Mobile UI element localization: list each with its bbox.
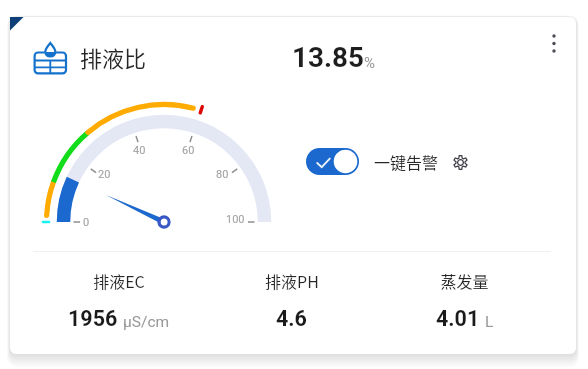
- button[interactable]: 蒸发量: [378, 269, 551, 331]
- staticText: 1956: [68, 306, 118, 331]
- staticText: 蒸发量: [440, 269, 489, 292]
- staticText: 一键告警: [374, 150, 439, 173]
- staticText: 40: [133, 144, 146, 157]
- staticText: 13.85: [292, 41, 364, 74]
- button[interactable]: More options: [538, 29, 570, 61]
- staticText: 4.6: [276, 306, 307, 331]
- staticText: 4.01: [436, 306, 480, 331]
- staticText: 100: [226, 213, 245, 226]
- staticText: 排液比: [80, 41, 147, 73]
- staticText: L: [485, 313, 494, 331]
- staticText: 0: [83, 216, 90, 229]
- button[interactable]: 排液EC: [33, 269, 205, 331]
- staticText: 排液PH: [265, 269, 319, 292]
- staticText: 20: [98, 168, 111, 181]
- staticText: %: [364, 54, 375, 72]
- staticText: 60: [182, 144, 195, 157]
- staticText: 80: [216, 168, 229, 181]
- button[interactable]: Alarm settings: [450, 152, 470, 172]
- button[interactable]: 排液PH: [205, 269, 378, 331]
- staticText: μS/cm: [123, 313, 170, 331]
- button[interactable]: One-key alarm toggle: [306, 148, 359, 175]
- staticText: 排液EC: [93, 269, 145, 292]
